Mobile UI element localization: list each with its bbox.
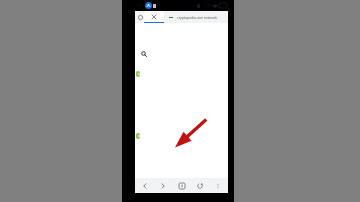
staticText: cryptopedia.one network <box>177 15 217 20</box>
button[interactable]: Site information <box>136 13 144 21</box>
button[interactable]: More options <box>212 180 224 192</box>
button[interactable]: Home <box>176 180 188 192</box>
staticText: LTE <box>206 4 211 8</box>
button[interactable]: Minimize <box>167 14 174 21</box>
button[interactable]: Back <box>139 180 151 192</box>
button[interactable]: Forward <box>157 180 169 192</box>
button[interactable]: Reload <box>194 180 206 192</box>
button[interactable]: Close tab <box>144 11 164 23</box>
staticText: 17% <box>136 4 143 8</box>
